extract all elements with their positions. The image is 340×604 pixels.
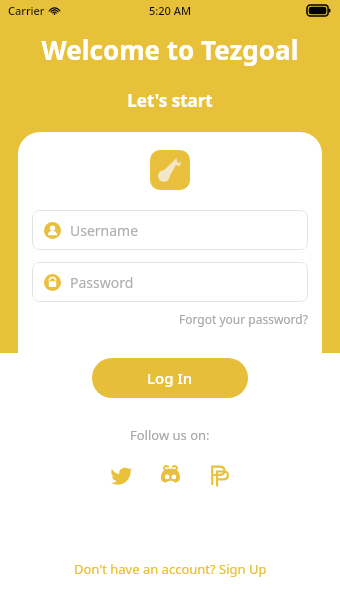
button[interactable]: PayPal: [203, 460, 233, 490]
staticText: Follow us on:: [130, 426, 210, 444]
staticText: Welcome to Tezgoal: [0, 32, 340, 67]
button[interactable]: Twitter: [107, 460, 137, 490]
staticText: Username: [70, 221, 139, 240]
button[interactable]: Discord: [155, 460, 185, 490]
staticText: Forgot your password?: [179, 311, 308, 327]
button[interactable]: Log In: [92, 358, 248, 398]
button[interactable]: Don't have an account? Sign Up: [58, 554, 283, 584]
other: App logo: [150, 150, 190, 190]
staticText: Password: [70, 273, 134, 292]
staticText: Let's start: [0, 89, 340, 112]
staticText: Don't have an account? Sign Up: [74, 560, 267, 578]
staticText: 5:20 AM: [149, 3, 192, 18]
staticText: Log In: [147, 368, 193, 388]
button[interactable]: Password: [32, 262, 308, 302]
button[interactable]: Forgot your password?: [165, 308, 322, 330]
button[interactable]: Username: [32, 210, 308, 250]
staticText: Carrier: [8, 3, 45, 18]
